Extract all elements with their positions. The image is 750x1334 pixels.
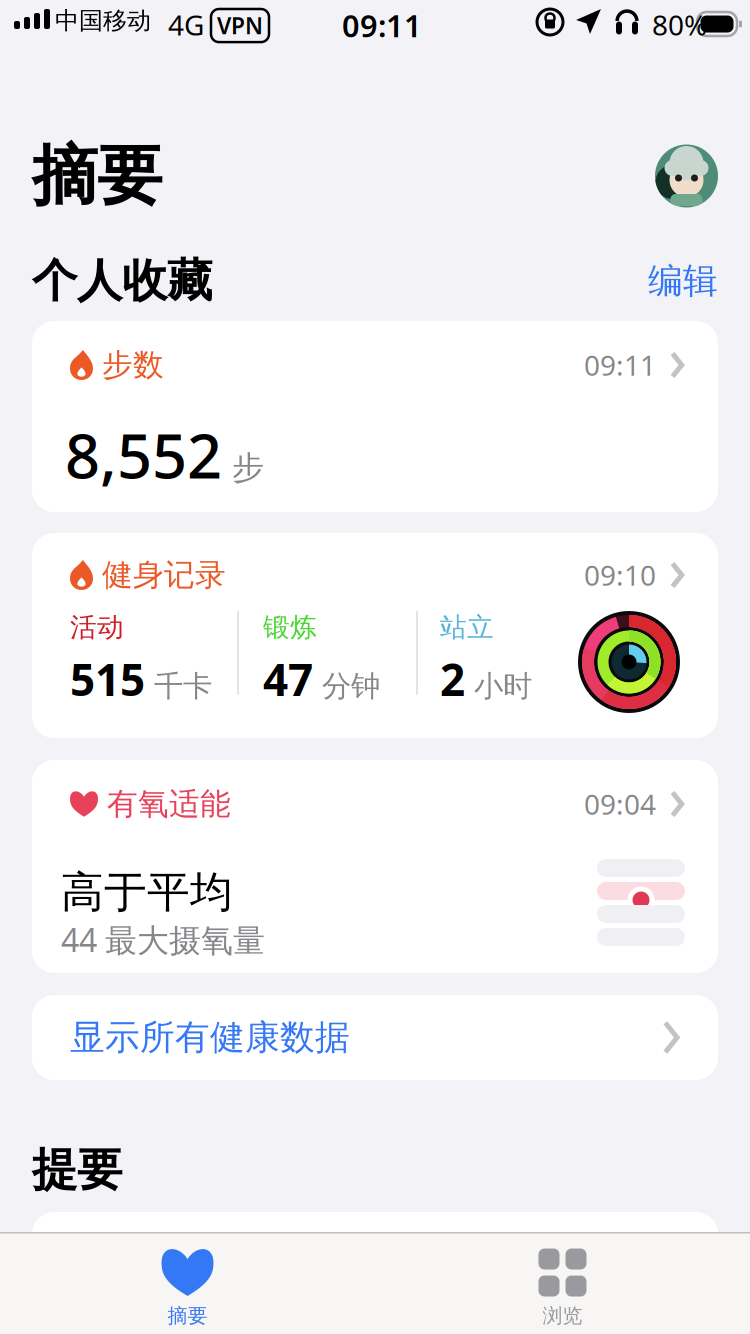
staticText: 站立 xyxy=(440,611,494,644)
staticText: 09:04 xyxy=(584,785,656,823)
staticText: 浏览 xyxy=(542,1303,582,1328)
button[interactable]: 步数 xyxy=(32,321,718,512)
staticText: 锻炼 xyxy=(263,611,317,644)
staticText: 活动 xyxy=(70,611,124,644)
staticText: 健身记录 xyxy=(102,556,226,594)
button[interactable]: 个人资料 xyxy=(655,144,718,207)
button[interactable]: 编辑 xyxy=(628,254,718,308)
staticText: 44 最大摄氧量 xyxy=(61,918,265,961)
button[interactable]: 健身记录 xyxy=(32,533,718,738)
staticText: VPN xyxy=(217,10,263,41)
staticText: 摘要 xyxy=(167,1303,207,1328)
staticText: 09:10 xyxy=(584,556,656,594)
staticText: 编辑 xyxy=(648,260,718,302)
staticText: 4G xyxy=(168,6,204,43)
staticText: 小时 xyxy=(474,668,532,704)
button[interactable]: 有氧适能 xyxy=(32,760,718,973)
staticText: 步 xyxy=(232,448,264,487)
staticText: 分钟 xyxy=(322,668,380,704)
button[interactable]: 浏览 xyxy=(375,1233,750,1334)
button[interactable]: 摘要 xyxy=(0,1233,375,1334)
button[interactable]: 显示所有健康数据 xyxy=(32,995,718,1080)
staticText: 47 xyxy=(263,650,313,708)
staticText: 09:11 xyxy=(342,5,422,46)
staticText: 80% xyxy=(652,6,707,43)
staticText: 2 xyxy=(440,650,465,708)
staticText: 千卡 xyxy=(154,668,212,704)
staticText: 步数 xyxy=(102,346,164,384)
staticText: 提要 xyxy=(32,1142,122,1198)
staticText: 高于平均 xyxy=(61,866,233,918)
staticText: 中国移动 xyxy=(55,6,151,35)
staticText: 个人收藏 xyxy=(32,253,212,309)
staticText: 有氧适能 xyxy=(107,785,231,823)
staticText: 摘要 xyxy=(32,136,162,216)
staticText: 515 xyxy=(70,650,145,708)
staticText: 8,552 xyxy=(65,414,222,495)
staticText: 09:11 xyxy=(584,346,656,384)
staticText: 显示所有健康数据 xyxy=(70,1016,350,1059)
